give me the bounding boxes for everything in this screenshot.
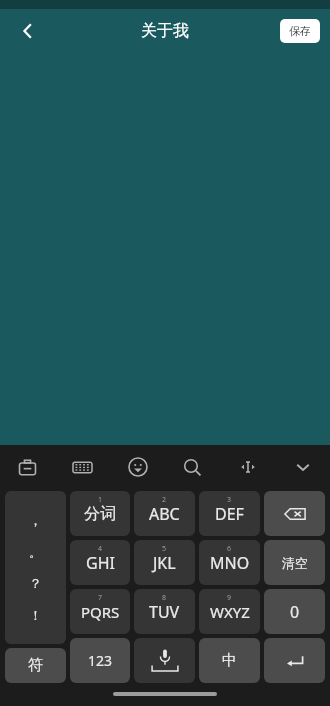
- staticText: 5: [162, 544, 167, 554]
- staticText: 保存: [289, 24, 311, 38]
- staticText: 7: [98, 593, 103, 603]
- staticText: 。: [29, 544, 42, 560]
- button[interactable]: 符: [5, 648, 66, 683]
- staticText: DEF: [215, 503, 244, 525]
- button[interactable]: Search: [165, 445, 220, 489]
- staticText: 分词: [84, 504, 116, 524]
- staticText: 8: [162, 593, 167, 603]
- staticText: MNO: [210, 552, 250, 574]
- staticText: 123: [88, 651, 113, 670]
- button[interactable]: 保存: [280, 19, 320, 43]
- staticText: JKL: [153, 552, 176, 574]
- staticText: 9: [227, 593, 232, 603]
- button[interactable]: Back: [8, 11, 48, 51]
- button[interactable]: Chinese input: [199, 638, 260, 683]
- button[interactable]: Hide keyboard: [275, 445, 330, 489]
- staticText: 清空: [282, 555, 308, 571]
- staticText: 4: [98, 544, 103, 554]
- button[interactable]: JKL: [134, 540, 195, 585]
- staticText: ABC: [149, 503, 180, 525]
- staticText: ！: [29, 607, 42, 623]
- button[interactable]: 分词: [70, 491, 130, 536]
- staticText: 中: [222, 651, 237, 670]
- button[interactable]: Clipboard: [0, 445, 55, 489]
- button[interactable]: TUV: [134, 589, 195, 634]
- staticText: 符: [28, 656, 43, 675]
- staticText: 3: [227, 495, 232, 505]
- staticText: WXYZ: [210, 602, 250, 622]
- staticText: ，: [29, 512, 42, 528]
- button[interactable]: 123: [70, 638, 130, 683]
- button[interactable]: Move cursor: [220, 445, 275, 489]
- staticText: TUV: [149, 601, 180, 623]
- button[interactable]: GHI: [70, 540, 130, 585]
- button[interactable]: Backspace: [264, 491, 325, 536]
- staticText: 6: [227, 544, 232, 554]
- button[interactable]: Voice input: [134, 638, 195, 683]
- button[interactable]: Emoji: [110, 445, 165, 489]
- staticText: 2: [162, 495, 167, 505]
- staticText: ？: [29, 575, 42, 591]
- button[interactable]: Enter: [264, 638, 325, 683]
- button[interactable]: PQRS: [70, 589, 130, 634]
- staticText: GHI: [86, 552, 115, 574]
- staticText: 关于我: [141, 21, 189, 41]
- button[interactable]: ，: [5, 491, 66, 644]
- button[interactable]: 清空: [264, 540, 325, 585]
- button[interactable]: ABC: [134, 491, 195, 536]
- button[interactable]: MNO: [199, 540, 260, 585]
- button[interactable]: DEF: [199, 491, 260, 536]
- staticText: 0: [290, 601, 300, 623]
- button[interactable]: Keyboard layout: [55, 445, 110, 489]
- staticText: PQRS: [81, 602, 120, 622]
- button[interactable]: WXYZ: [199, 589, 260, 634]
- button[interactable]: 0: [264, 589, 325, 634]
- staticText: 1: [98, 495, 103, 505]
